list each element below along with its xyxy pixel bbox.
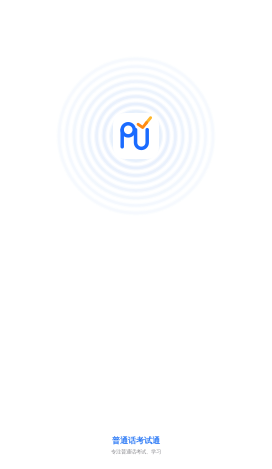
staticText: 专注普通话考试、学习 [111,448,161,455]
staticText: 普通话考试通 [112,436,160,445]
